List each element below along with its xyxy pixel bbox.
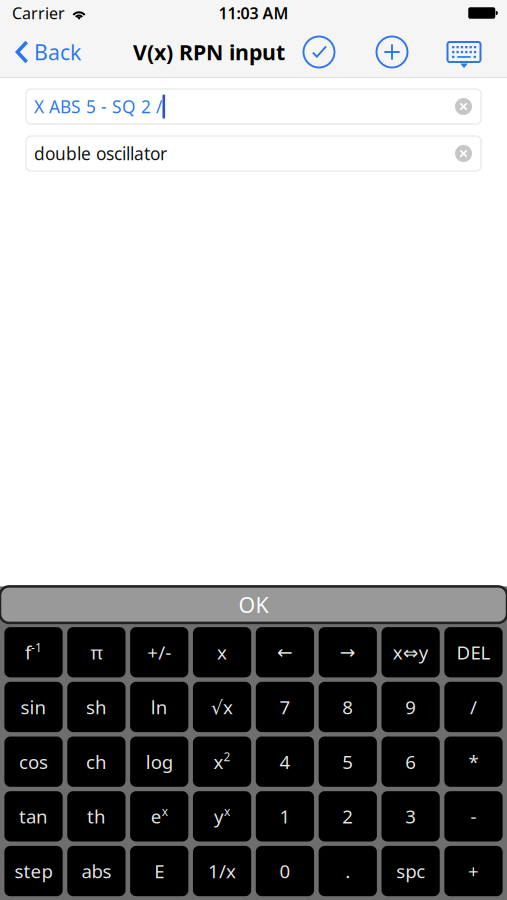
staticText: cos	[19, 749, 48, 774]
staticText: y	[214, 804, 224, 829]
staticText: π	[90, 640, 102, 665]
button[interactable]: √x	[193, 682, 251, 732]
staticText: abs	[81, 859, 111, 883]
staticText: 3	[405, 804, 416, 829]
staticText: 7	[279, 695, 290, 719]
staticText: e	[151, 804, 162, 829]
button[interactable]: x	[193, 736, 251, 787]
button[interactable]: 8	[319, 682, 377, 732]
staticText: Carrier	[12, 2, 65, 24]
button[interactable]: e	[130, 791, 188, 841]
staticText: sin	[20, 695, 46, 719]
staticText: E	[154, 859, 164, 883]
button[interactable]: Clear text	[455, 145, 472, 162]
button[interactable]: 3	[381, 791, 440, 841]
button[interactable]: x	[193, 627, 251, 677]
staticText: double oscillator	[34, 142, 167, 165]
button[interactable]: Add	[370, 28, 414, 76]
button[interactable]: ch	[67, 736, 125, 787]
staticText: 2	[342, 804, 353, 829]
button[interactable]: abs	[67, 846, 125, 896]
staticText: x	[214, 749, 224, 774]
staticText: 4	[279, 749, 290, 774]
staticText: 6	[405, 749, 416, 774]
button[interactable]: →	[319, 627, 377, 677]
staticText: .	[345, 859, 350, 883]
staticText: x	[162, 803, 168, 819]
button[interactable]: sin	[4, 682, 63, 732]
button[interactable]: step	[4, 846, 63, 896]
button[interactable]: .	[319, 846, 377, 896]
button[interactable]: x⇔y	[381, 627, 440, 677]
staticText: 9	[405, 695, 416, 719]
button[interactable]: cos	[4, 736, 63, 787]
staticText: 1	[279, 804, 290, 829]
staticText: OK	[238, 590, 268, 619]
button[interactable]: ln	[130, 682, 188, 732]
button[interactable]: -	[444, 791, 503, 841]
button[interactable]: +/-	[130, 627, 188, 677]
staticText: DEL	[456, 640, 490, 665]
staticText: spc	[396, 859, 425, 883]
button[interactable]: 6	[381, 736, 440, 787]
staticText: -	[470, 804, 476, 829]
button[interactable]: *	[444, 736, 503, 787]
staticText: 2	[224, 749, 231, 765]
staticText: X ABS 5 - SQ 2 /	[34, 95, 162, 118]
button[interactable]: spc	[381, 846, 440, 896]
button[interactable]: Clear text	[455, 98, 472, 115]
button[interactable]: 4	[256, 736, 314, 787]
staticText: ln	[151, 695, 168, 719]
button[interactable]: y	[193, 791, 251, 841]
button[interactable]: Back	[0, 28, 89, 76]
staticText: 8	[342, 695, 353, 719]
staticText: √x	[211, 695, 233, 719]
button[interactable]: sh	[67, 682, 125, 732]
button[interactable]: 0	[256, 846, 314, 896]
staticText: ch	[86, 749, 107, 774]
staticText: f	[25, 640, 31, 665]
staticText: 11:03 AM	[218, 2, 288, 24]
staticText: x	[224, 803, 230, 819]
staticText: Back	[34, 38, 81, 66]
staticText: tan	[19, 804, 48, 829]
button[interactable]: Dismiss keyboard	[442, 28, 486, 76]
staticText: -1	[31, 639, 42, 655]
staticText: sh	[86, 695, 107, 719]
staticText: x⇔y	[393, 640, 429, 665]
staticText: 0	[279, 859, 290, 883]
button[interactable]: OK	[0, 586, 507, 623]
staticText: /	[470, 695, 477, 719]
button[interactable]: +	[444, 846, 503, 896]
button[interactable]: DEL	[444, 627, 503, 677]
button[interactable]: 9	[381, 682, 440, 732]
button[interactable]: ←	[256, 627, 314, 677]
button[interactable]: π	[67, 627, 125, 677]
button[interactable]: 5	[319, 736, 377, 787]
button[interactable]: 7	[256, 682, 314, 732]
staticText: step	[14, 859, 52, 883]
staticText: →	[340, 642, 356, 663]
staticText: V(x) RPN input	[133, 38, 285, 66]
button[interactable]: th	[67, 791, 125, 841]
staticText: *	[468, 749, 478, 774]
button[interactable]: 2	[319, 791, 377, 841]
button[interactable]: 1	[256, 791, 314, 841]
staticText: ←	[277, 642, 293, 663]
staticText: th	[87, 804, 106, 829]
button[interactable]: tan	[4, 791, 63, 841]
button[interactable]: 1/x	[193, 846, 251, 896]
staticText: +/-	[147, 640, 171, 665]
button[interactable]: log	[130, 736, 188, 787]
staticText: x	[217, 640, 227, 665]
staticText: log	[146, 749, 173, 774]
staticText: 5	[342, 749, 353, 774]
button[interactable]: E	[130, 846, 188, 896]
staticText: +	[468, 859, 479, 883]
button[interactable]: /	[444, 682, 503, 732]
staticText: 1/x	[208, 859, 236, 883]
button[interactable]: Confirm	[297, 28, 341, 76]
button[interactable]: f	[4, 627, 63, 677]
